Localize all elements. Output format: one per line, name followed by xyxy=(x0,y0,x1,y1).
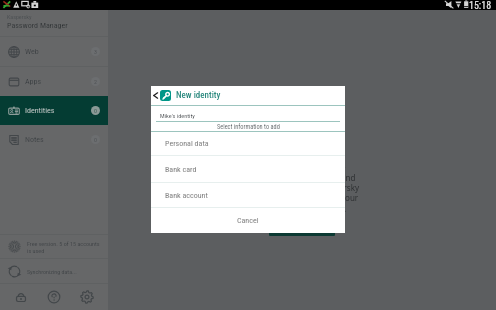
button[interactable]: Settings xyxy=(75,285,99,309)
button[interactable] xyxy=(269,230,335,236)
button[interactable]: Back xyxy=(151,86,345,105)
staticText: ersky xyxy=(339,182,359,193)
staticText: Bank account xyxy=(165,191,208,200)
staticText: Web xyxy=(25,47,39,56)
staticText: Password Manager xyxy=(7,21,68,30)
staticText: Free version. 5 of 15 accounts is used xyxy=(27,240,102,254)
button[interactable]: Help xyxy=(42,285,66,309)
button[interactable]: Bank card xyxy=(151,156,345,182)
staticText: . xyxy=(344,203,347,214)
staticText: Synchronizing data... xyxy=(27,268,77,275)
button[interactable]: Personal data xyxy=(151,132,345,155)
staticText: 15:18 xyxy=(469,0,492,10)
staticText: Bank card xyxy=(165,165,197,174)
button[interactable]: Mike's identity xyxy=(151,106,345,122)
staticText: Kaspersky xyxy=(7,13,32,20)
staticText: Identities xyxy=(25,106,55,115)
button[interactable]: Lock xyxy=(9,285,33,309)
button[interactable]: Apps xyxy=(0,67,108,96)
staticText: Notes xyxy=(25,135,44,144)
staticText: 3 xyxy=(94,48,97,55)
staticText: Apps xyxy=(25,77,42,86)
staticText: 2 xyxy=(94,78,97,85)
button[interactable]: Bank account xyxy=(151,183,345,207)
button[interactable]: Free version. 5 of 15 accounts is used xyxy=(0,235,108,258)
staticText: Personal data xyxy=(165,139,209,148)
button[interactable]: Identities xyxy=(0,96,108,125)
button[interactable]: Synchronizing data... xyxy=(0,259,108,283)
staticText: Cancel xyxy=(237,216,259,225)
staticText: Mike's identity xyxy=(160,112,195,119)
staticText: 0 xyxy=(94,107,97,114)
button[interactable]: Web xyxy=(0,37,108,66)
staticText: 0 xyxy=(94,136,97,143)
button[interactable]: Notes xyxy=(0,125,108,154)
staticText: your xyxy=(341,192,359,203)
staticText: Select information to add xyxy=(217,123,280,130)
button[interactable]: Cancel xyxy=(151,208,345,233)
staticText: r xyxy=(342,163,346,174)
staticText: New identity xyxy=(176,90,221,101)
staticText: and xyxy=(341,172,356,183)
